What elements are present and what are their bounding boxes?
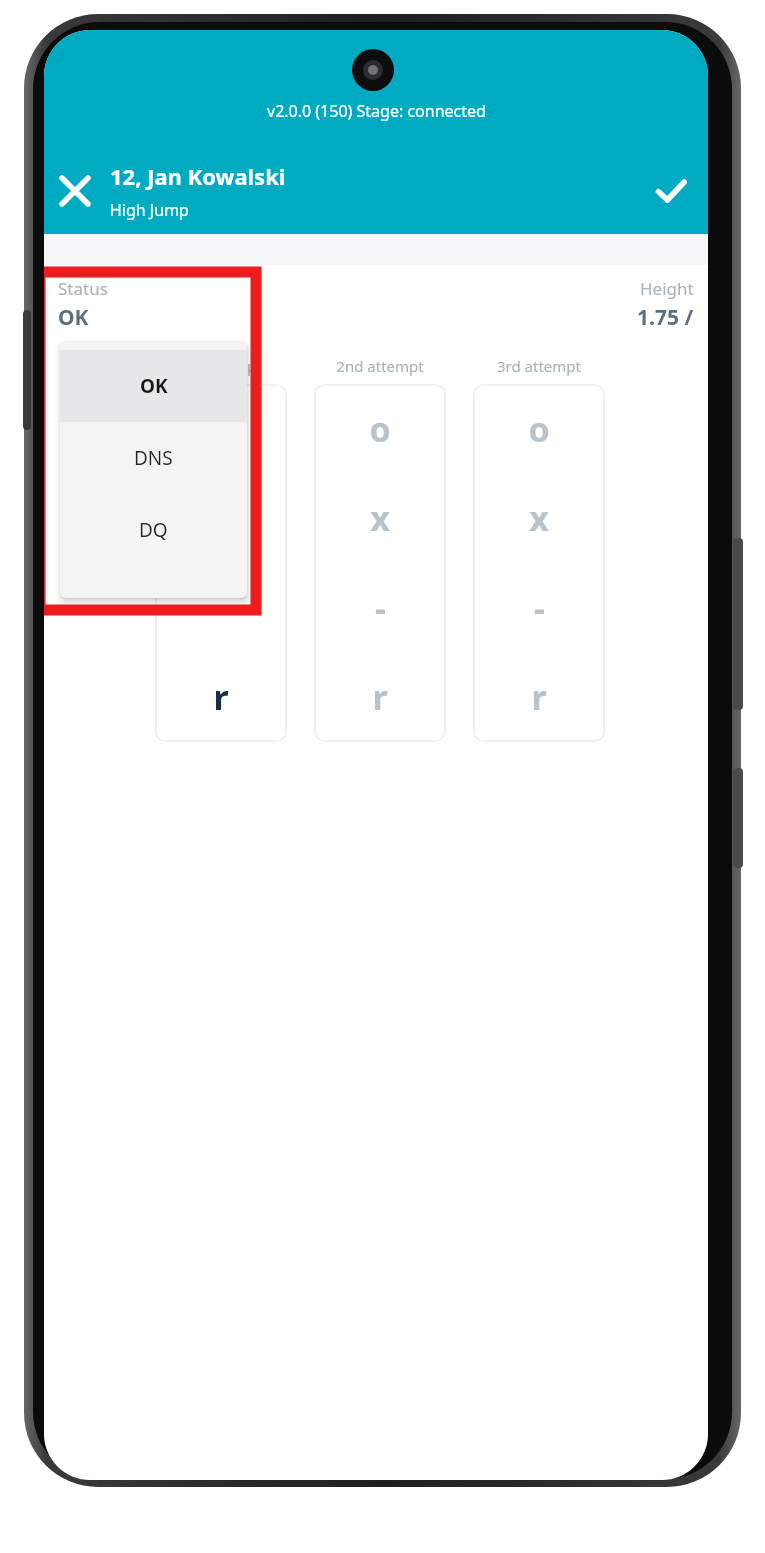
staticText: DQ: [139, 517, 168, 543]
staticText: 2nd attempt: [336, 356, 424, 376]
button[interactable]: o: [155, 385, 287, 473]
staticText: v2.0.0 (150) Stage: connected: [267, 100, 486, 122]
staticText: -: [534, 585, 545, 631]
button[interactable]: o: [155, 384, 287, 742]
button[interactable]: OK: [60, 350, 247, 422]
button[interactable]: Status: [58, 277, 637, 332]
staticText: 1.75 /: [637, 303, 694, 332]
staticText: r: [213, 674, 229, 720]
button[interactable]: -: [155, 564, 287, 652]
staticText: 1st attempt: [180, 356, 262, 376]
staticText: 3rd attempt: [497, 356, 581, 376]
staticText: r: [531, 674, 547, 720]
button[interactable]: r: [314, 653, 446, 741]
button[interactable]: o: [314, 384, 446, 742]
button[interactable]: r: [473, 653, 605, 741]
staticText: o: [210, 406, 232, 452]
staticText: High Jump: [110, 199, 189, 221]
staticText: o: [369, 406, 391, 452]
staticText: -: [375, 585, 386, 631]
staticText: Height: [640, 277, 694, 300]
staticText: r: [372, 674, 388, 720]
button[interactable]: Close: [44, 160, 106, 222]
button[interactable]: x: [155, 474, 287, 562]
button[interactable]: Confirm: [640, 160, 702, 222]
button[interactable]: -: [314, 564, 446, 652]
button[interactable]: -: [473, 564, 605, 652]
button[interactable]: o: [473, 385, 605, 473]
button[interactable]: x: [473, 474, 605, 562]
staticText: DNS: [134, 445, 173, 471]
button[interactable]: DNS: [60, 422, 247, 494]
staticText: OK: [140, 373, 168, 399]
button[interactable]: o: [473, 384, 605, 742]
button[interactable]: r: [155, 653, 287, 741]
staticText: Status: [58, 277, 108, 300]
staticText: 12, Jan Kowalski: [110, 161, 286, 191]
button[interactable]: DQ: [60, 494, 247, 566]
staticText: x: [370, 495, 390, 541]
staticText: x: [529, 495, 549, 541]
button[interactable]: o: [314, 385, 446, 473]
staticText: OK: [58, 303, 89, 332]
staticText: o: [528, 406, 550, 452]
button[interactable]: x: [314, 474, 446, 562]
staticText: -: [216, 585, 227, 631]
